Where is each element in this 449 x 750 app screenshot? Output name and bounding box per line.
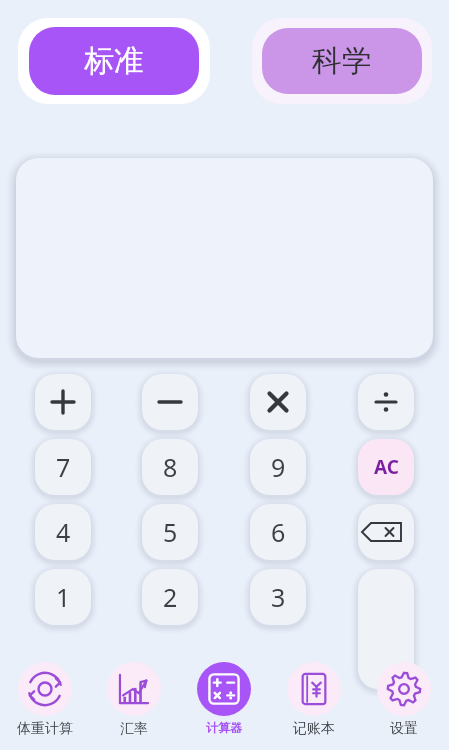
button[interactable]: AC (358, 439, 414, 495)
staticText: 记账本 (293, 720, 335, 738)
staticText: 2 (163, 580, 178, 614)
button[interactable]: Backspace (358, 504, 414, 560)
button[interactable]: 体重计算 (0, 652, 89, 738)
staticText: 设置 (390, 720, 418, 738)
button[interactable]: 2 (142, 569, 198, 625)
staticText: 计算器 (206, 720, 242, 735)
button[interactable]: 记账本 (269, 652, 359, 738)
button[interactable]: 标准 (18, 18, 210, 104)
button[interactable]: 6 (250, 504, 306, 560)
button[interactable]: 汇率 (89, 652, 179, 738)
staticText: 6 (271, 515, 286, 549)
button[interactable]: 科学 (252, 18, 432, 104)
staticText: 7 (56, 450, 71, 484)
button[interactable]: 计算器 (179, 652, 269, 735)
staticText: 标准 (84, 42, 144, 80)
button[interactable]: 设置 (359, 652, 449, 738)
button[interactable]: 8 (142, 439, 198, 495)
button[interactable]: 7 (35, 439, 91, 495)
staticText: 8 (163, 450, 178, 484)
staticText: 3 (271, 580, 286, 614)
button[interactable]: 3 (250, 569, 306, 625)
staticText: 汇率 (120, 720, 148, 738)
staticText: 4 (56, 515, 71, 549)
button[interactable]: Equals (358, 569, 414, 689)
button[interactable]: Plus (35, 374, 91, 430)
button[interactable]: 4 (35, 504, 91, 560)
staticText: AC (374, 454, 399, 480)
button[interactable]: Minus (142, 374, 198, 430)
button[interactable]: 1 (35, 569, 91, 625)
button[interactable]: Divide (358, 374, 414, 430)
staticText: 9 (271, 450, 286, 484)
staticText: 体重计算 (17, 720, 73, 738)
staticText: 5 (163, 515, 178, 549)
button[interactable]: 5 (142, 504, 198, 560)
button[interactable]: 9 (250, 439, 306, 495)
button[interactable]: Multiply (250, 374, 306, 430)
staticText: 科学 (312, 42, 372, 80)
staticText: 1 (56, 580, 71, 614)
